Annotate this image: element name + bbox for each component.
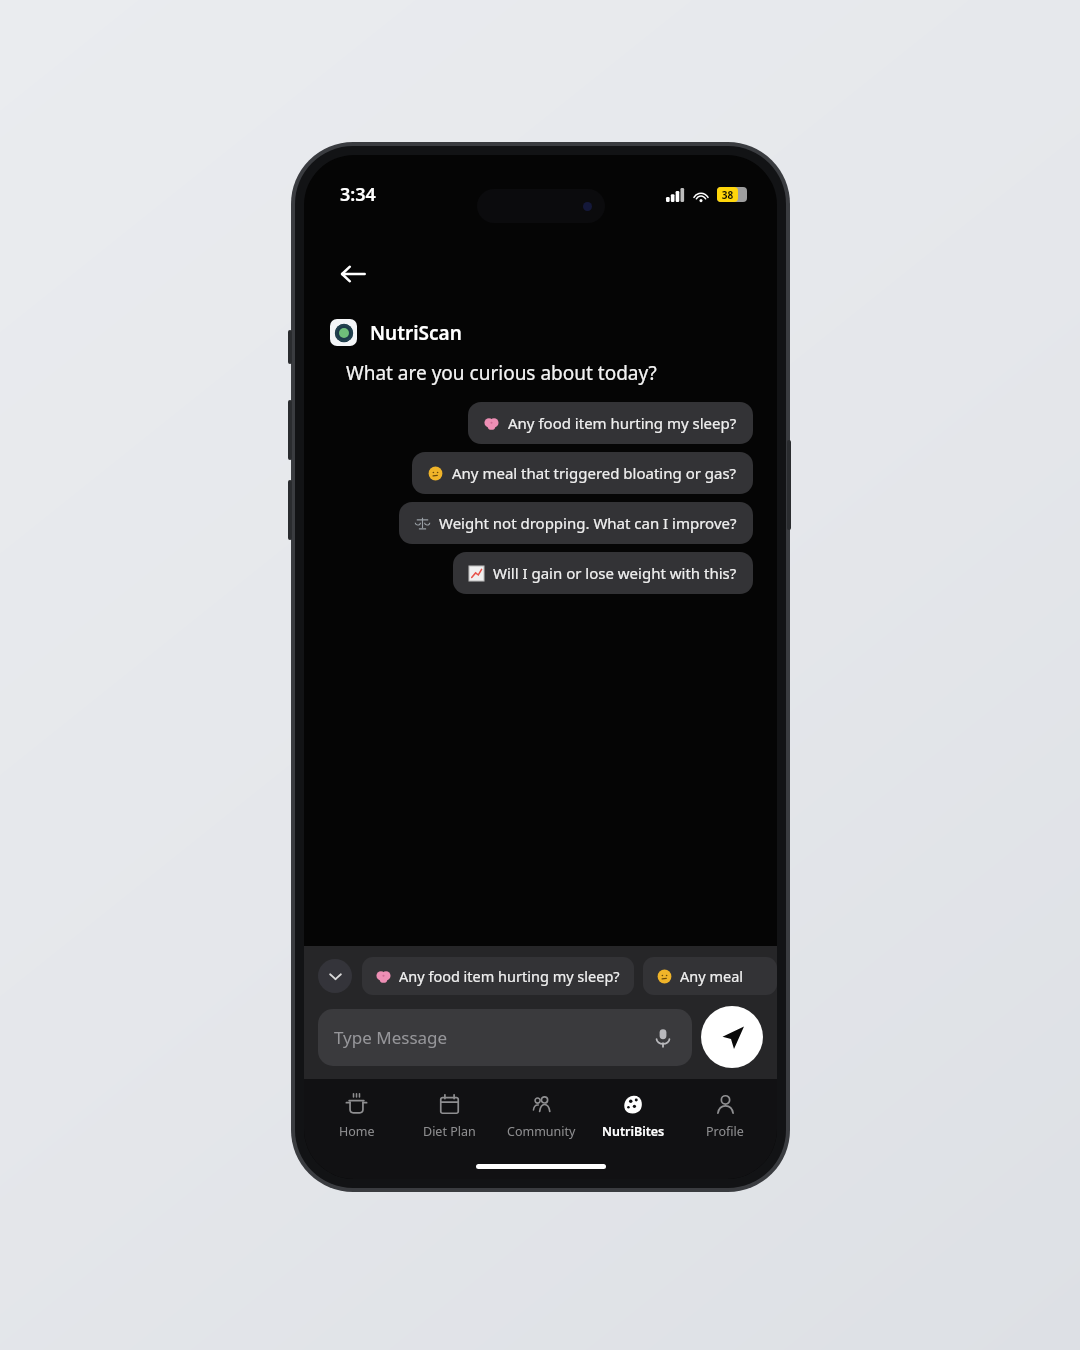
button[interactable]: Profile [679,1079,771,1153]
button[interactable]: Weight not dropping. What can I improve? [399,502,753,544]
button[interactable]: Any meal that triggered bloating [643,957,777,995]
staticText: What are you curious about today? [346,360,657,386]
staticText: Any food item hurting my sleep? [508,413,737,433]
staticText: Weight not dropping. What can I improve? [439,513,737,533]
button[interactable]: Any meal that triggered bloating or gas? [412,452,753,494]
button[interactable]: Any food item hurting my sleep? [468,402,753,444]
staticText: Any meal that triggered bloating or gas? [452,463,737,483]
button[interactable]: Send [701,1006,763,1068]
staticText: 38 [717,188,738,202]
staticText: Community [507,1123,576,1140]
staticText: 3:34 [340,182,376,207]
staticText: Will I gain or lose weight with this? [493,563,737,583]
button[interactable]: Collapse suggestions [318,959,352,993]
staticText: Profile [706,1123,744,1140]
button[interactable]: Voice input [650,1025,676,1051]
staticText: Any food item hurting my sleep? [399,966,620,986]
button[interactable]: Back [330,251,376,297]
button[interactable]: Home [310,1079,403,1153]
staticText: Type Message [334,1026,650,1049]
button[interactable]: Community [495,1079,587,1153]
staticText: Any meal that triggered bloating [680,966,763,986]
button[interactable]: Type Message [318,1009,692,1066]
button[interactable]: Will I gain or lose weight with this? [453,552,753,594]
button[interactable]: Diet Plan [403,1079,495,1153]
staticText: Home [339,1123,375,1140]
button[interactable]: NutriBites [587,1079,679,1153]
staticText: NutriScan [370,320,462,346]
staticText: NutriBites [602,1123,665,1140]
button[interactable]: Any food item hurting my sleep? [362,957,634,995]
staticText: Diet Plan [423,1123,476,1140]
